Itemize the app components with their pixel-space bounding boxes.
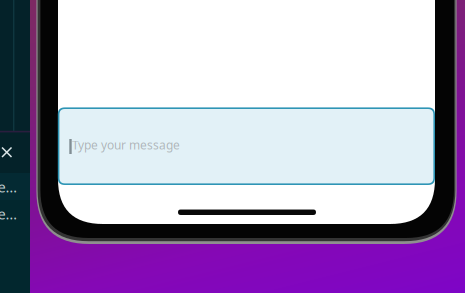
staticText: e… bbox=[0, 204, 17, 223]
staticText: e… bbox=[0, 177, 17, 196]
button[interactable]: Close bbox=[0, 0, 30, 293]
staticText: Type your message bbox=[72, 137, 180, 153]
button[interactable]: e… bbox=[0, 173, 30, 200]
button[interactable]: Type your message bbox=[0, 0, 465, 153]
button[interactable]: e… bbox=[0, 200, 30, 293]
